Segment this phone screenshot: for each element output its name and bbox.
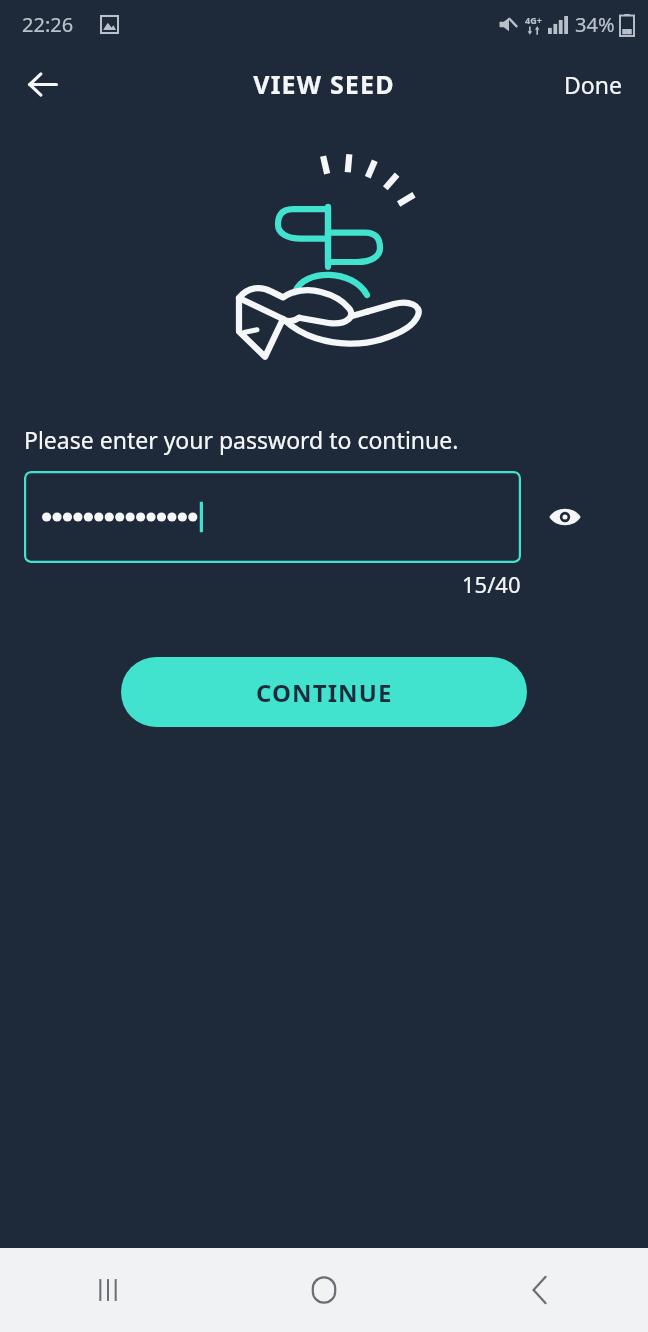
staticText: 22:26 [22, 11, 74, 38]
button[interactable]: Back [432, 1248, 648, 1332]
staticText: VIEW SEED [253, 67, 395, 101]
staticText: Done [564, 69, 622, 100]
staticText: 4G+ [525, 14, 542, 26]
button[interactable]: Home [216, 1248, 432, 1332]
staticText: 15/40 [462, 569, 521, 599]
staticText: 34% [575, 11, 615, 38]
button[interactable]: Back [12, 54, 72, 114]
button[interactable]: Show password [533, 485, 597, 549]
button[interactable]: Recent apps [0, 1248, 216, 1332]
staticText: Please enter your password to continue. [24, 424, 459, 455]
button[interactable]: Done [548, 57, 638, 112]
button[interactable] [24, 471, 521, 563]
button[interactable]: CONTINUE [121, 657, 527, 727]
staticText: CONTINUE [256, 676, 393, 709]
